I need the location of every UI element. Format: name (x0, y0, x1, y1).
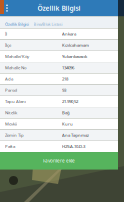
staticText: Bina/Blok Listesi (33, 21, 62, 27)
button[interactable]: Özellik Bilgisi (3, 15, 31, 28)
staticText: Kızılcahamam (62, 42, 89, 48)
staticText: Mevkii (5, 121, 17, 127)
staticText: Pafta (5, 143, 15, 149)
staticText: İlçe (5, 42, 11, 48)
staticText: Nitelik (5, 110, 17, 116)
staticText: İl (5, 31, 7, 37)
staticText: Ada (5, 76, 13, 82)
staticText: Ana Taşınmaz (62, 132, 89, 138)
staticText: Özellik Bilgisi (37, 4, 80, 13)
staticText: Ankara (62, 31, 76, 37)
staticText: Tapu Alanı (5, 98, 26, 104)
staticText: Parsel (5, 87, 17, 93)
button[interactable]: Bina/Blok Listesi (31, 15, 65, 28)
button[interactable]: Menu (0, 0, 14, 16)
button[interactable]: Favorilere ekle (0, 152, 118, 169)
staticText: 218 (62, 76, 68, 82)
staticText: Mahalle No (5, 65, 27, 71)
staticText: 134096 (62, 65, 74, 71)
staticText: 21.990,52 (62, 98, 78, 104)
staticText: 93 (62, 87, 66, 93)
staticText: Yukarıkavacık (62, 53, 87, 59)
staticText: Favorilere ekle (43, 158, 75, 164)
staticText: H29-A-10-D-3 (62, 143, 85, 149)
staticText: Zemin Tip (5, 132, 24, 138)
staticText: Özellik Bilgisi (5, 21, 29, 27)
staticText: Mahalle/Köy (5, 53, 29, 59)
staticText: Kuru (62, 121, 73, 127)
staticText: Bağ (62, 110, 70, 116)
